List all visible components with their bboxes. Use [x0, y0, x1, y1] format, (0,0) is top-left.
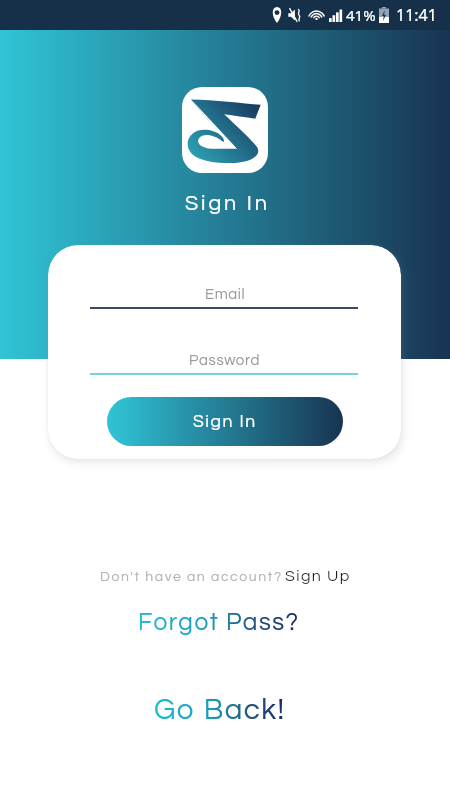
staticText: Sign In — [185, 192, 270, 214]
button[interactable]: Go Back! — [154, 695, 286, 725]
button[interactable]: Sign In — [107, 397, 343, 446]
staticText: Email — [205, 287, 246, 302]
staticText: Password — [189, 353, 261, 368]
staticText: 41% — [346, 5, 376, 25]
button[interactable]: Forgot Pass? — [138, 610, 300, 635]
staticText: Sign Up — [285, 568, 351, 584]
button[interactable]: Sign Up — [285, 568, 351, 584]
staticText: Forgot Pass? — [138, 610, 300, 635]
staticText: Sign In — [193, 413, 257, 431]
staticText: 11:41 — [396, 4, 437, 26]
staticText: Go Back! — [154, 695, 286, 725]
staticText: Don't have an account? — [100, 570, 283, 584]
